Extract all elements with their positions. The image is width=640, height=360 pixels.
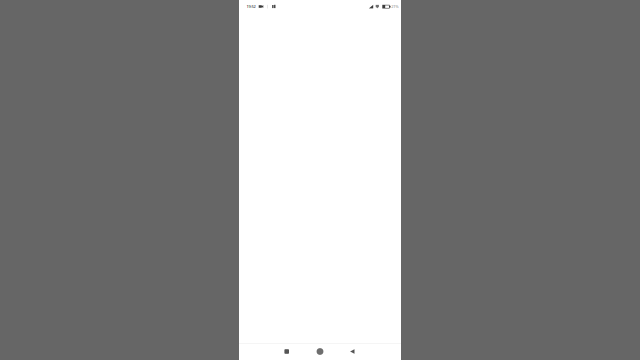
staticText: 21% <box>391 4 398 9</box>
button[interactable]: Recent apps <box>270 343 303 360</box>
button[interactable]: Back <box>337 343 370 360</box>
staticText: 19:52 <box>246 4 255 9</box>
button[interactable]: Home <box>303 343 337 360</box>
